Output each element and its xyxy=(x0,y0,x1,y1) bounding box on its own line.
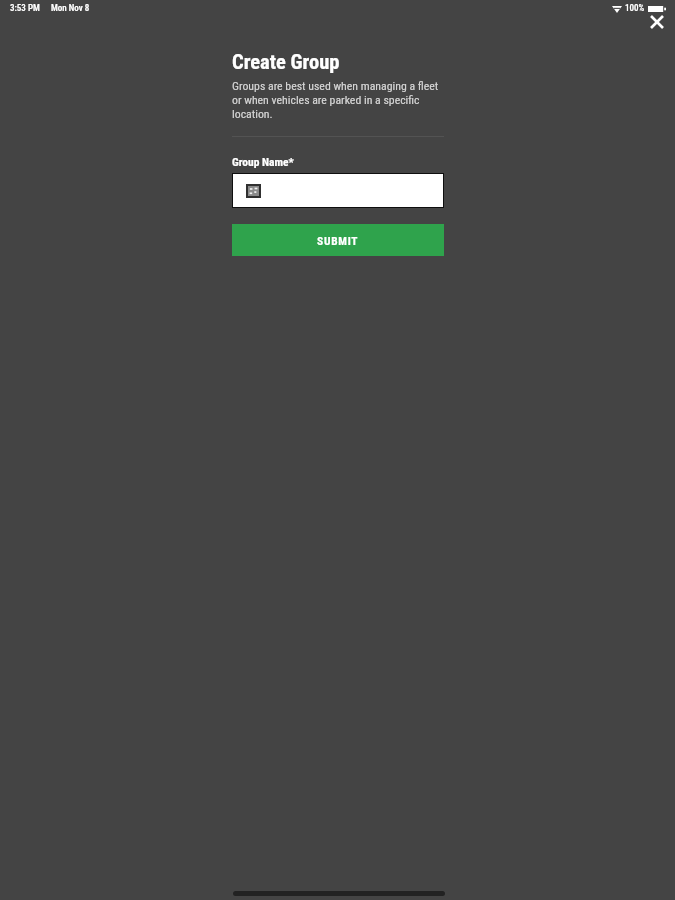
staticText: SUBMIT xyxy=(317,234,359,247)
button[interactable]: Close xyxy=(645,10,669,34)
staticText: Mon Nov 8 xyxy=(51,3,90,14)
staticText: 100% xyxy=(625,3,645,14)
button[interactable]: SUBMIT xyxy=(232,224,444,256)
staticText: Group Name* xyxy=(232,155,294,168)
staticText: Create Group xyxy=(232,50,340,74)
staticText: 3:53 PM xyxy=(10,3,40,14)
staticText: Groups are best used when managing a fle… xyxy=(232,79,444,121)
button[interactable] xyxy=(232,173,444,208)
